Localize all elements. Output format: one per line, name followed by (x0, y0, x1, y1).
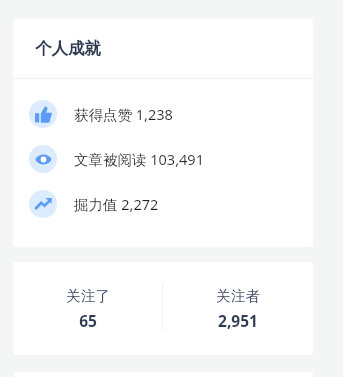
staticText: 2,951 (218, 310, 258, 331)
button[interactable]: Article views (13, 136, 313, 181)
staticText: 获得点赞 1,238 (74, 104, 173, 124)
staticText: 个人成就 (35, 38, 101, 59)
other: Article views (29, 145, 57, 173)
staticText: 关注者 (216, 287, 260, 305)
staticText: 关注了 (66, 287, 110, 305)
button[interactable]: 关注者 (163, 262, 313, 355)
button[interactable]: 关注了 (13, 262, 162, 355)
button[interactable]: Likes received (13, 91, 313, 136)
staticText: 文章被阅读 103,491 (74, 149, 204, 169)
staticText: 65 (79, 310, 97, 331)
staticText: 掘力值 2,272 (74, 194, 159, 214)
other: Likes received (29, 100, 57, 128)
button[interactable]: Power score (13, 181, 313, 226)
other: Power score (29, 190, 57, 218)
